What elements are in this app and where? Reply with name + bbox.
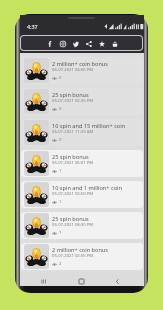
staticText: 25 spin bonus [52,153,89,161]
staticText: 2 million+ coin bonus [52,246,108,254]
staticText: 06-07-2021 11:33 AM [52,129,94,135]
staticText: 06-07-2021 04:06 PM [52,67,94,73]
button[interactable]: 10 spin and 15 million+ coin [21,119,143,146]
button[interactable]: Rate us [98,40,105,47]
button[interactable]: 25 spin bonus [21,88,143,115]
staticText: 1 [59,230,62,236]
staticText: 06-07-2021 02:35 PM [52,98,94,104]
button[interactable]: Privacy policy [111,40,118,47]
staticText: 05-07-2021 02:55 PM [52,253,94,259]
staticText: 10 spin and 15 million+ coin [52,122,126,130]
button[interactable]: Facebook [46,40,53,47]
button[interactable]: Recent apps [37,275,50,288]
staticText: 1 [59,168,62,174]
staticText: 0 [59,137,62,143]
staticText: 25 spin bonus [52,91,89,99]
staticText: 4:37 [27,23,38,30]
button[interactable]: 10 spin and 1 million+ coin [21,181,143,208]
button[interactable]: Share [85,40,92,47]
button[interactable]: Instagram [59,40,66,47]
staticText: 05-07-2021 08:30 PM [52,222,94,228]
staticText: 25 spin bonus [52,215,89,223]
button[interactable]: Twitter [72,40,79,47]
button[interactable]: 25 spin bonus [21,150,143,177]
staticText: 05-07-2021 06:01 PM [52,160,94,166]
button[interactable]: 2 million+ coin bonus [21,57,143,84]
staticText: 10 spin and 1 million+ coin [52,184,122,192]
staticText: 0 [59,75,62,81]
staticText: 1 [59,199,62,205]
button[interactable]: 2 million+ coin bonus [21,243,143,270]
staticText: 2 million+ coin bonus [52,60,108,68]
button[interactable]: Back [111,275,124,288]
button[interactable]: Home [75,275,88,288]
staticText: 2 [59,261,62,267]
button[interactable]: 25 spin bonus [21,212,143,239]
staticText: 05-07-2021 03:50 PM [52,191,94,197]
staticText: 0 [59,106,62,112]
